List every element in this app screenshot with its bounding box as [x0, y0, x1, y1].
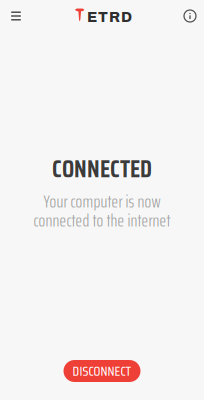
staticText: E T R D	[87, 9, 132, 25]
staticText: CONNECTED	[52, 150, 152, 188]
button[interactable]: About	[177, 3, 203, 29]
staticText: Your computer is now	[43, 188, 160, 215]
staticText: connected to the internet	[33, 207, 170, 234]
staticText: DISCONNECT	[72, 360, 131, 381]
button[interactable]: Menu	[3, 3, 29, 29]
button[interactable]: DISCONNECT	[63, 360, 140, 382]
